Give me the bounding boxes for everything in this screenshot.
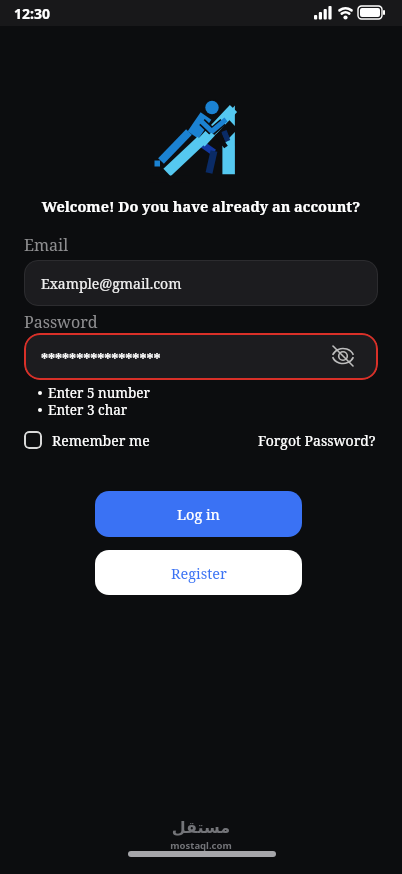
staticText: mostaql.com: [0, 839, 402, 852]
staticText: Enter 3 char: [48, 401, 128, 419]
button[interactable]: [24, 431, 42, 449]
staticText: Register: [171, 563, 227, 583]
staticText: Password: [24, 311, 98, 333]
staticText: Email: [24, 234, 69, 256]
staticText: Example@gmail.com: [41, 274, 182, 293]
staticText: مستقل: [0, 818, 402, 837]
staticText: Enter 5 number: [48, 384, 150, 402]
staticText: Welcome! Do you have already an account?: [0, 196, 402, 216]
staticText: 12:30: [14, 4, 50, 23]
button[interactable]: Log in: [95, 491, 302, 537]
staticText: Remember me: [52, 431, 150, 450]
button[interactable]: Forgot Password?: [258, 431, 376, 450]
staticText: *****************: [41, 349, 161, 368]
button[interactable]: *****************: [24, 333, 378, 380]
button[interactable]: Register: [95, 550, 302, 595]
button[interactable]: Example@gmail.com: [24, 260, 378, 306]
staticText: Log in: [177, 504, 220, 524]
